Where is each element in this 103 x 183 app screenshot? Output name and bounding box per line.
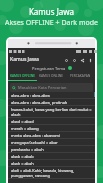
staticText: mengupa (sekuah) = abar xyxy=(11,140,58,145)
button[interactable]: abra-abra : abra-abra xyxy=(8,92,95,98)
button[interactable]: Share xyxy=(78,56,86,64)
staticText: abah = abah xyxy=(11,161,34,166)
staticText: KAMUS OFFLINE xyxy=(10,74,35,78)
staticText: Kamus Jawa xyxy=(10,56,39,63)
staticText: Akses OFFLINE + Dark mode xyxy=(0,18,103,28)
staticText: merah = abang xyxy=(11,126,39,131)
button[interactable]: abab = abab xyxy=(8,153,95,159)
staticText: Masukkan Kata Pencarian xyxy=(18,85,67,90)
button[interactable]: Bookmark xyxy=(62,56,70,64)
button[interactable]: mengupa (sekuah) = abar xyxy=(8,139,95,145)
button[interactable]: Favorite xyxy=(70,56,78,64)
staticText: abra-abra : abra-abra xyxy=(11,93,50,98)
staticText: Pengaturan Tema xyxy=(32,66,66,71)
button[interactable]: KAMUS ONLINE xyxy=(37,72,66,80)
button[interactable]: Masukkan Kata Pencarian xyxy=(10,83,93,92)
staticText: mreta abra-abra : abanomi xyxy=(11,133,61,138)
staticText: KAMUS ONLINE xyxy=(39,74,64,78)
staticText: pembantu = abuh xyxy=(11,147,44,152)
staticText: PERCAKAPAN xyxy=(70,74,91,78)
staticText: Kamus Jawa xyxy=(0,6,103,17)
button[interactable]: Toggle theme xyxy=(68,66,72,70)
staticText: abab = abab xyxy=(11,154,34,159)
button[interactable]: KAMUS OFFLINE xyxy=(8,72,37,80)
button[interactable]: abdi = abdi.Kahir, kawula, kiswang, pung… xyxy=(8,167,95,178)
button[interactable]: PERCAKAPAN xyxy=(66,72,95,80)
button[interactable]: hwara-kulut, kawa yang berlian dari mulu… xyxy=(8,106,95,117)
button[interactable]: abah = abah xyxy=(8,160,95,166)
staticText: hwara-kulut, kawa yang berlian dari mulu… xyxy=(11,107,92,117)
button[interactable]: mreta abra-abra : abanomi xyxy=(8,132,95,138)
staticText: abdi = abdi.Kahir, kawula, kiswang, pung… xyxy=(11,168,92,178)
button[interactable]: More options xyxy=(86,56,94,64)
staticText: abad = abad xyxy=(11,119,34,124)
button[interactable]: abad = abad xyxy=(8,118,95,124)
staticText: abra-abra : abra-abra, pratinah xyxy=(11,100,68,105)
button[interactable]: merah = abang xyxy=(8,125,95,131)
button[interactable]: pembantu = abuh xyxy=(8,146,95,152)
button[interactable]: abra-abra : abra-abra, pratinah xyxy=(8,99,95,105)
